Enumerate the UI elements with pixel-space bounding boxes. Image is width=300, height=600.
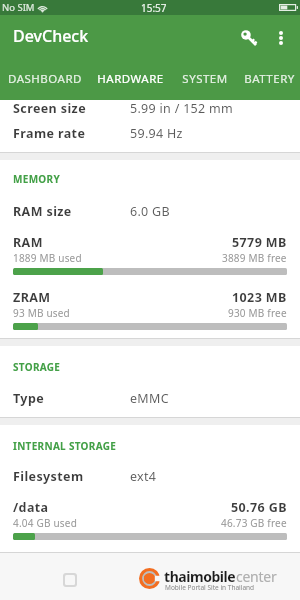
- staticText: 59.94 Hz: [130, 125, 183, 142]
- button[interactable]: Frame rate: [0, 114, 300, 152]
- button[interactable]: HARDWARE: [89, 57, 171, 100]
- staticText: 1023 MB: [232, 289, 287, 306]
- staticText: 5779 MB: [232, 234, 287, 251]
- button[interactable]: Type: [0, 387, 300, 410]
- button[interactable]: Permissions: [233, 19, 267, 53]
- staticText: 930 MB free: [228, 306, 287, 320]
- staticText: No SIM: [2, 1, 35, 14]
- staticText: 93 MB used: [13, 306, 70, 320]
- staticText: Mobile Portal Site in Thailand: [165, 583, 255, 592]
- staticText: 15:57: [141, 1, 167, 15]
- staticText: Filesystem: [13, 468, 84, 485]
- button[interactable]: BATTERY: [239, 57, 300, 100]
- button[interactable]: More options: [267, 22, 295, 50]
- button[interactable]: RAM size: [0, 198, 300, 224]
- staticText: RAM: [13, 234, 43, 251]
- staticText: BATTERY: [244, 71, 295, 87]
- staticText: 46.73 GB free: [221, 516, 287, 530]
- button[interactable]: Filesystem: [0, 466, 300, 487]
- staticText: /data: [13, 499, 49, 516]
- staticText: STORAGE: [13, 360, 61, 374]
- staticText: 50.76 GB: [231, 499, 287, 516]
- button[interactable]: /data: [0, 487, 300, 540]
- staticText: RAM size: [13, 203, 72, 220]
- staticText: 3889 MB free: [222, 251, 287, 265]
- staticText: INTERNAL STORAGE: [13, 439, 117, 453]
- staticText: MEMORY: [13, 172, 60, 186]
- staticText: Frame rate: [13, 125, 86, 142]
- staticText: Screen size: [13, 100, 87, 114]
- button[interactable]: RAM: [0, 224, 300, 275]
- staticText: 5.99 in / 152 mm: [130, 100, 234, 114]
- staticText: 1889 MB used: [13, 251, 82, 265]
- staticText: DASHBOARD: [8, 71, 82, 87]
- button[interactable]: ZRAM: [0, 275, 300, 330]
- staticText: eMMC: [130, 390, 169, 407]
- staticText: thaimobile: [164, 567, 236, 586]
- staticText: 4.04 GB used: [13, 516, 77, 530]
- button[interactable]: thaimobile: [0, 553, 300, 600]
- staticText: SYSTEM: [182, 71, 228, 87]
- staticText: ZRAM: [13, 289, 51, 306]
- staticText: center: [236, 567, 277, 586]
- staticText: 6.0 GB: [130, 203, 170, 220]
- staticText: Type: [13, 390, 45, 407]
- staticText: HARDWARE: [97, 71, 164, 87]
- button[interactable]: Screen size: [0, 100, 300, 114]
- button[interactable]: DASHBOARD: [0, 57, 89, 100]
- staticText: DevCheck: [13, 25, 89, 47]
- staticText: ext4: [130, 468, 157, 485]
- button[interactable]: SYSTEM: [171, 57, 239, 100]
